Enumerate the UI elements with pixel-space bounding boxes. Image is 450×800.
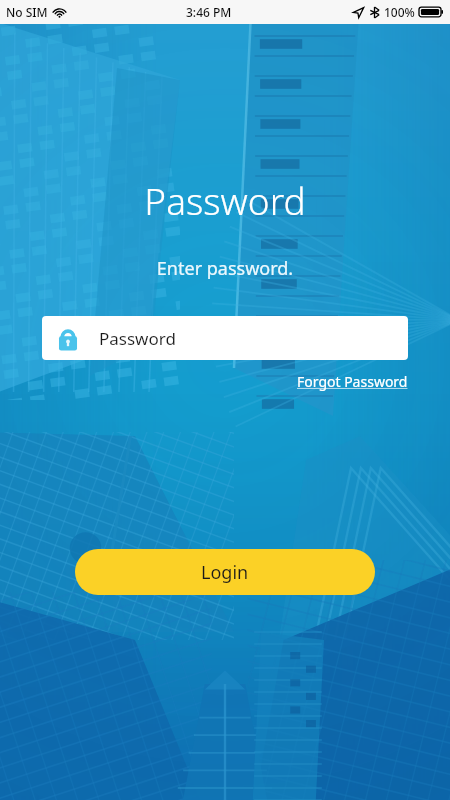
button[interactable]: Password bbox=[42, 316, 408, 360]
staticText: Password bbox=[0, 175, 450, 225]
staticText: Login bbox=[201, 560, 249, 585]
staticText: 100% bbox=[384, 4, 415, 20]
button[interactable]: Login bbox=[75, 549, 375, 595]
staticText: 3:46 PM bbox=[186, 4, 232, 20]
staticText: No SIM bbox=[6, 4, 48, 20]
staticText: Enter password. bbox=[0, 256, 450, 281]
staticText: Password bbox=[99, 327, 176, 350]
button[interactable]: Forgot Password bbox=[297, 370, 408, 393]
